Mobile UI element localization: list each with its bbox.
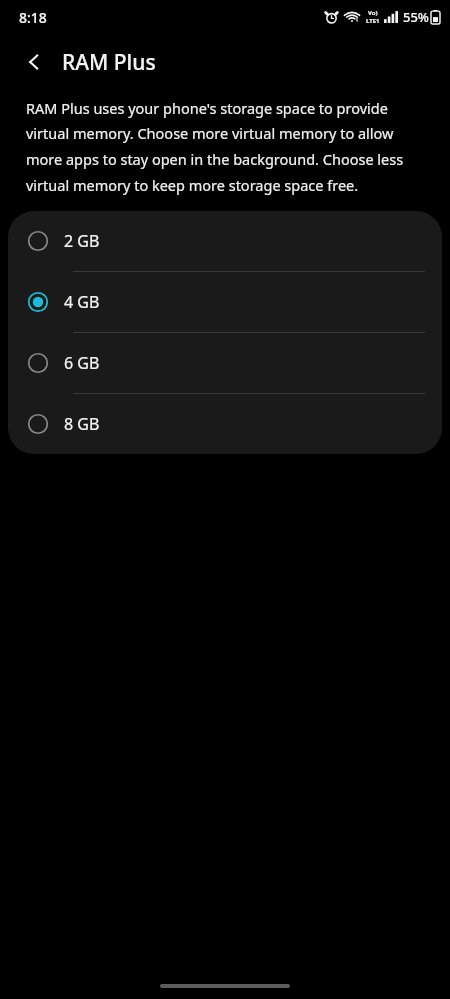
staticText: Vo) <box>368 9 378 17</box>
staticText: RAM Plus uses your phone's storage space… <box>26 98 426 196</box>
staticText: 4 GB <box>64 291 100 313</box>
staticText: RAM Plus <box>62 48 156 77</box>
button[interactable]: 2 GB <box>8 211 442 271</box>
staticText: 8:18 <box>19 8 47 27</box>
button[interactable]: 8 GB <box>8 394 442 454</box>
button[interactable]: 4 GB <box>8 272 442 332</box>
staticText: 55% <box>403 8 429 26</box>
staticText: 8 GB <box>64 413 100 435</box>
button[interactable]: Back <box>12 40 56 84</box>
staticText: 2 GB <box>64 230 100 252</box>
staticText: LTE1 <box>366 17 380 25</box>
button[interactable]: 6 GB <box>8 333 442 393</box>
staticText: 6 GB <box>64 352 100 374</box>
